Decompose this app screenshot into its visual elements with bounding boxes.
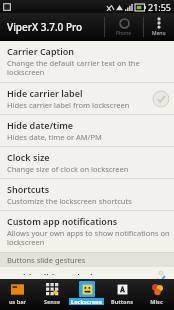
button[interactable]: Menu: [144, 13, 174, 41]
staticText: Allows your own apps to show notificatio…: [7, 228, 170, 248]
staticText: Clock size: [7, 151, 50, 163]
staticText: Change the default carrier text on the l…: [7, 58, 170, 78]
staticText: ViperX 3.7.0 Pro: [7, 20, 104, 34]
staticText: Hide date/time: [7, 119, 74, 131]
button[interactable]: Lockscreen: [69, 279, 104, 310]
staticText: Buttons slide gestures: [7, 255, 86, 265]
staticText: us bar: [9, 298, 26, 305]
button[interactable]: Carrier Caption: [0, 41, 174, 82]
staticText: Change size of clock on lockscreen: [7, 164, 129, 174]
button[interactable]: Unchecked: [152, 90, 170, 108]
button[interactable]: Buttons: [104, 279, 139, 310]
staticText: Lockscreen: [71, 298, 102, 305]
staticText: Phone: [116, 30, 132, 37]
staticText: Buttons: [111, 298, 133, 305]
button[interactable]: Hide carrier label: [0, 83, 174, 114]
button[interactable]: Enable Slide2Unlock: [0, 267, 174, 279]
button[interactable]: Phone: [105, 13, 143, 41]
staticText: Carrier Caption: [7, 45, 75, 57]
button[interactable]: Shortcuts: [0, 179, 174, 210]
button[interactable]: Sense: [34, 279, 69, 310]
staticText: Customize the lockscreen shortcuts: [7, 196, 132, 206]
button[interactable]: Clock size: [0, 147, 174, 178]
staticText: Hides date, time or AM/PM: [7, 132, 102, 142]
staticText: Hide carrier label: [7, 87, 83, 99]
staticText: Misc: [150, 298, 163, 305]
button[interactable]: Hide date/time: [0, 115, 174, 146]
staticText: 21:55: [148, 1, 172, 13]
staticText: Enable Slide2Unlock: [7, 271, 96, 275]
staticText: Hides carrier label from lockscreen: [7, 100, 130, 110]
button[interactable]: Custom app notifications: [0, 211, 174, 252]
staticText: Shortcuts: [7, 183, 50, 195]
button[interactable]: Misc: [139, 279, 174, 310]
staticText: Menu: [152, 30, 166, 37]
staticText: Sense: [44, 298, 60, 305]
button[interactable]: us bar: [0, 279, 34, 310]
staticText: Custom app notifications: [7, 215, 118, 227]
button[interactable]: Checked: [152, 271, 170, 275]
